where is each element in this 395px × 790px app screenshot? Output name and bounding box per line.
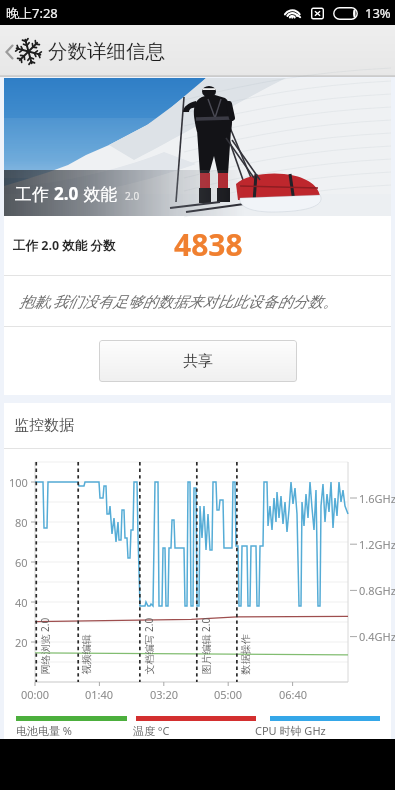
staticText: 数据操作 <box>238 634 251 674</box>
staticText: 100 <box>9 475 28 490</box>
staticText: 1.2GHz <box>359 537 395 552</box>
staticText: 4838 <box>174 224 243 265</box>
staticText: 监控数据 <box>14 416 74 435</box>
staticText: 00:00 <box>21 687 50 702</box>
staticText: 视频编辑 <box>79 634 92 674</box>
button[interactable]: 共享 <box>99 340 297 382</box>
staticText: 效能 <box>79 182 118 205</box>
staticText: 60 <box>15 555 28 570</box>
staticText: 13% <box>365 4 391 22</box>
staticText: CPU 时钟 GHz <box>255 723 326 738</box>
staticText: 0.8GHz <box>359 583 395 598</box>
staticText: 01:40 <box>85 687 114 702</box>
staticText: 文档编写 2.0 <box>141 617 154 674</box>
other: Back <box>4 42 14 62</box>
staticText: 20 <box>15 635 28 650</box>
staticText: 05:00 <box>214 687 243 702</box>
staticText: 电池电量 % <box>16 723 73 738</box>
staticText: 03:20 <box>150 687 179 702</box>
staticText: 1.6GHz <box>359 491 395 506</box>
staticText: 80 <box>15 515 28 530</box>
staticText: 工作 2.0 效能 分数 <box>13 237 116 254</box>
staticText: 分数详细信息 <box>48 39 165 64</box>
staticText: 温度 °C <box>133 723 170 738</box>
staticText: 网络浏览 2.0 <box>37 617 50 674</box>
staticText: 2.0 <box>125 189 140 203</box>
button[interactable]: Back <box>0 39 175 64</box>
staticText: 抱歉,我们没有足够的数据来对比此设备的分数。 <box>19 291 338 311</box>
staticText: 06:40 <box>279 687 308 702</box>
staticText: 40 <box>15 595 28 610</box>
staticText: 晚上7:28 <box>6 4 58 22</box>
staticText: 共享 <box>183 352 213 371</box>
staticText: 图片编辑 2.0 <box>198 617 211 674</box>
staticText: 2.0 <box>54 182 79 205</box>
staticText: 0.4GHz <box>359 629 395 644</box>
staticText: 工作 <box>15 182 54 205</box>
